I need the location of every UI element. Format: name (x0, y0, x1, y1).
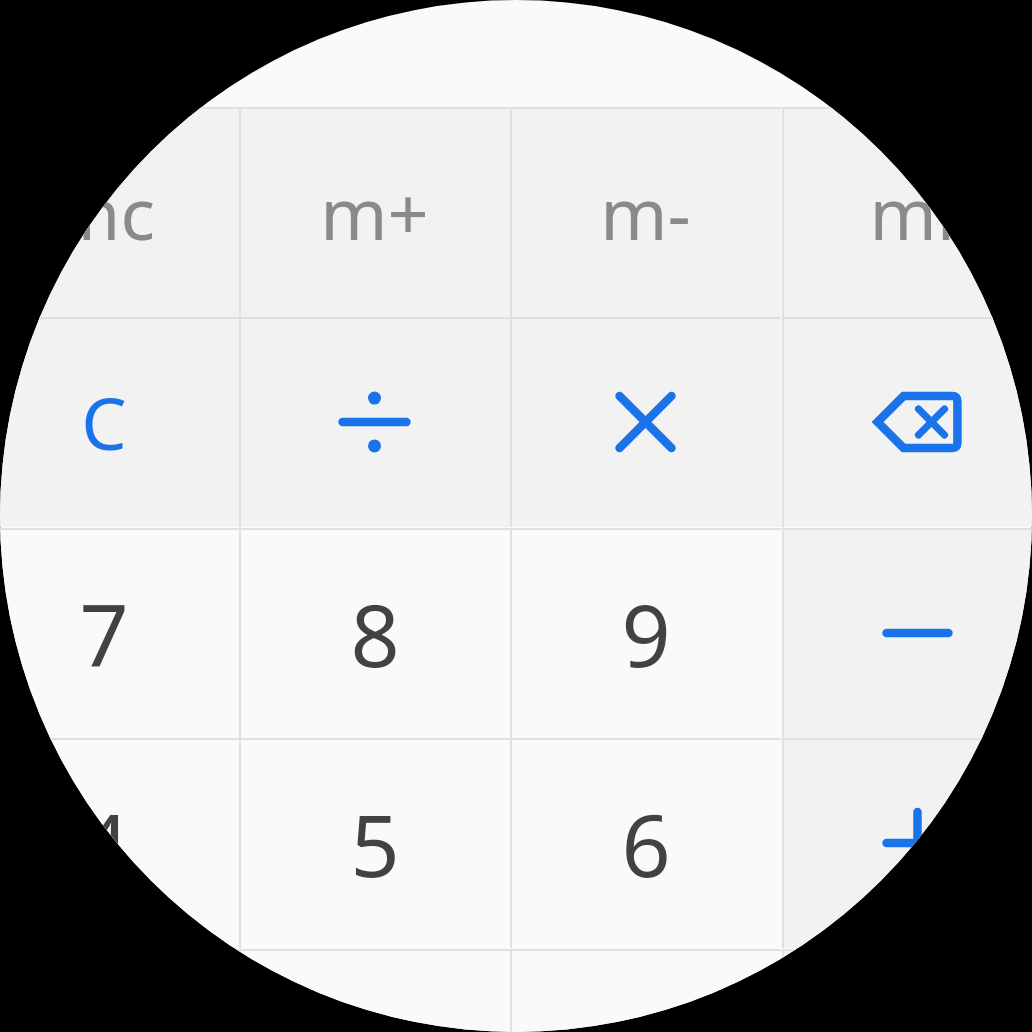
staticText: m- (600, 163, 691, 261)
staticText: mr (869, 163, 967, 261)
button[interactable]: Plus (782, 738, 1032, 948)
staticText: 5 (350, 785, 400, 902)
button[interactable]: 5 (239, 738, 510, 948)
button[interactable]: m+ (239, 107, 510, 317)
staticText: 4 (79, 785, 129, 902)
button[interactable]: Minus (782, 528, 1032, 738)
staticText: 9 (621, 575, 671, 692)
button[interactable]: 3 (510, 949, 781, 1032)
button[interactable]: 1 (0, 949, 239, 1032)
button[interactable]: 2 (239, 949, 510, 1032)
button[interactable]: Divide (239, 317, 510, 527)
button[interactable]: 4 (0, 738, 239, 948)
staticText: 3 (621, 996, 671, 1032)
staticText: C (81, 373, 127, 471)
button[interactable]: mc (0, 107, 239, 317)
staticText: 2 (350, 996, 400, 1032)
button[interactable]: 6 (510, 738, 781, 948)
button[interactable] (782, 949, 1032, 1032)
button[interactable]: 7 (0, 528, 239, 738)
staticText: mc (53, 163, 155, 261)
button[interactable]: 8 (239, 528, 510, 738)
button[interactable]: Backspace (782, 317, 1032, 527)
button[interactable]: 9 (510, 528, 781, 738)
staticText: 7 (79, 575, 129, 692)
staticText: 8 (350, 575, 400, 692)
button[interactable]: m- (510, 107, 781, 317)
staticText: m+ (320, 163, 429, 261)
button[interactable]: C (0, 317, 239, 527)
button[interactable]: mr (782, 107, 1032, 317)
button[interactable]: Multiply (510, 317, 781, 527)
staticText: 6 (621, 785, 671, 902)
